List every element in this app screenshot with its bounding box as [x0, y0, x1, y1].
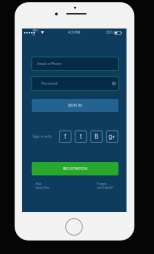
staticText: Sign in with	[32, 135, 51, 139]
staticText: WTC	[32, 28, 38, 37]
staticText: 35%	[106, 31, 113, 35]
staticText: Password	[41, 82, 57, 85]
button[interactable]: f	[59, 131, 71, 142]
staticText: REGISTRATION	[63, 166, 88, 171]
staticText: t	[80, 133, 82, 140]
staticText: Forgot password?	[97, 182, 114, 189]
button[interactable]: SIGN IN	[34, 120, 120, 133]
button[interactable]: Password	[34, 120, 120, 134]
staticText: g+	[109, 133, 116, 140]
button[interactable]: g+	[106, 131, 118, 142]
button[interactable]: B	[91, 131, 102, 142]
button[interactable]: t	[75, 131, 87, 142]
staticText: 4:21 PM	[68, 30, 80, 35]
staticText: Email or Phone	[37, 62, 61, 66]
button[interactable]: REGISTRATION	[34, 120, 120, 134]
staticText: B	[94, 133, 98, 140]
button[interactable]: Email or Phone	[34, 120, 120, 134]
staticText: f	[64, 133, 66, 140]
staticText: Ask question	[35, 182, 49, 189]
staticText: SIGN IN	[68, 103, 82, 108]
